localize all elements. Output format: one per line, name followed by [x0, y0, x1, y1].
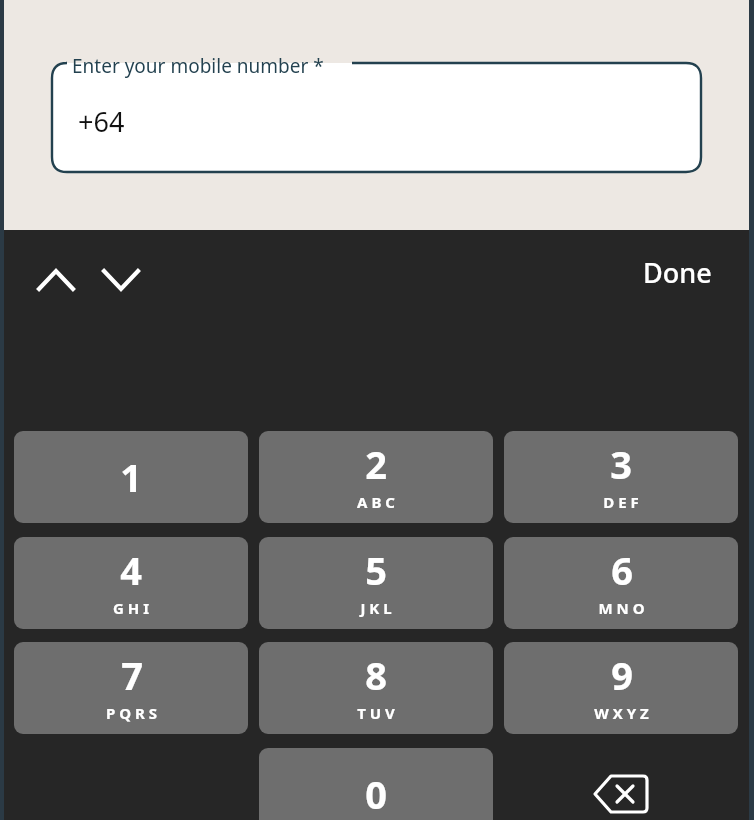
staticText: 7 — [121, 649, 143, 701]
staticText: T U V — [357, 703, 395, 723]
button[interactable]: 6 — [504, 537, 738, 629]
staticText: P Q R S — [106, 703, 157, 723]
button[interactable]: 3 — [504, 431, 738, 523]
staticText: 6 — [611, 544, 633, 596]
staticText: 3 — [610, 438, 632, 490]
button[interactable]: 7 — [14, 642, 248, 734]
button[interactable]: 5 — [259, 537, 493, 629]
staticText: J K L — [360, 598, 392, 618]
staticText: 4 — [120, 544, 142, 596]
staticText: W X Y Z — [594, 703, 649, 723]
button[interactable]: Enter your mobile number * — [0, 0, 754, 230]
button[interactable]: Previous field — [28, 252, 84, 308]
button[interactable]: Next field — [93, 252, 149, 308]
button[interactable]: Done — [637, 248, 718, 297]
button[interactable]: 2 — [259, 431, 493, 523]
staticText: A B C — [357, 492, 395, 512]
staticText: G H I — [113, 598, 149, 618]
button[interactable]: Backspace — [575, 754, 667, 820]
staticText: 1 — [120, 451, 142, 503]
staticText: +64 — [78, 103, 125, 140]
staticText: 8 — [365, 649, 387, 701]
staticText: Done — [643, 254, 712, 291]
button[interactable]: 8 — [259, 642, 493, 734]
staticText: Enter your mobile number * — [72, 53, 324, 79]
staticText: 2 — [365, 438, 387, 490]
button[interactable]: 0 — [259, 748, 493, 820]
staticText: 5 — [365, 544, 387, 596]
staticText: 0 — [365, 768, 387, 820]
button[interactable]: 4 — [14, 537, 248, 629]
staticText: M N O — [598, 598, 645, 618]
staticText: D E F — [603, 492, 639, 512]
button[interactable]: 1 — [14, 431, 248, 523]
button[interactable]: 9 — [504, 642, 738, 734]
staticText: 9 — [611, 649, 633, 701]
